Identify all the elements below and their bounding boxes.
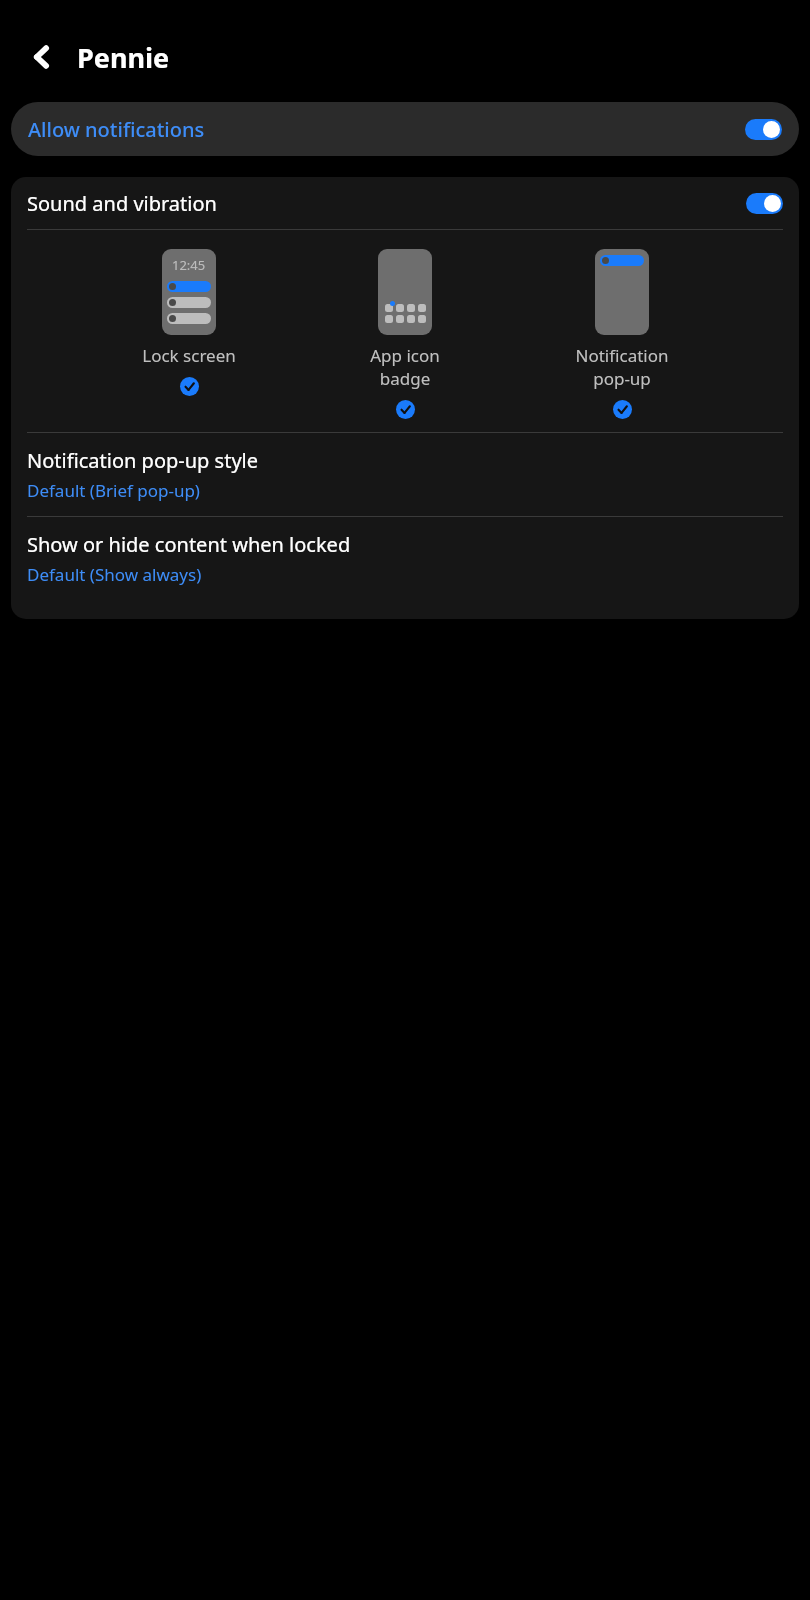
staticText: Pennie: [77, 39, 170, 76]
staticText: Notification pop-up style: [27, 447, 259, 474]
button[interactable]: Back: [21, 36, 63, 78]
staticText: Default (Brief pop-up): [27, 479, 200, 502]
staticText: Sound and vibration: [27, 190, 746, 217]
staticText: Show or hide content when locked: [27, 531, 351, 558]
staticText: Default (Show always): [27, 563, 202, 586]
button[interactable]: App icon badge: [346, 249, 464, 419]
button[interactable]: Notification pop-up: [563, 249, 681, 419]
button[interactable]: Allow notifications: [11, 102, 799, 156]
staticText: Notification pop-up: [574, 344, 670, 390]
staticText: App icon badge: [357, 344, 453, 390]
button[interactable]: Toggle: [745, 119, 782, 140]
button[interactable]: Sound and vibration: [11, 177, 799, 229]
button[interactable]: Show or hide content when locked: [11, 517, 799, 600]
button[interactable]: Toggle: [746, 193, 783, 214]
button[interactable]: 12:45: [130, 249, 248, 396]
staticText: Allow notifications: [28, 116, 745, 143]
staticText: Lock screen: [141, 344, 237, 367]
button[interactable]: Notification pop-up style: [11, 433, 799, 516]
staticText: 12:45: [172, 256, 206, 274]
